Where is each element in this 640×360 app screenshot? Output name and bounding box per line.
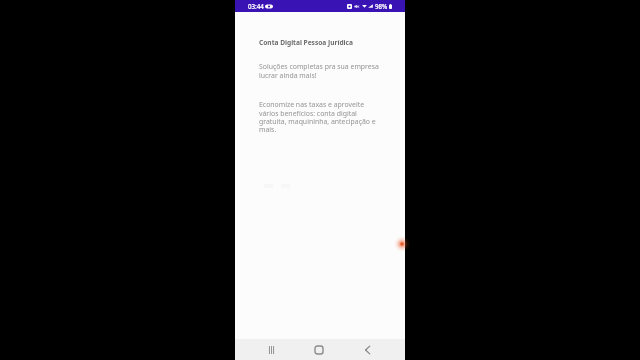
button[interactable]: Início [307, 339, 331, 360]
staticText: Economize nas taxas e aproveite vários b… [259, 100, 383, 134]
button[interactable]: Ajuda [394, 236, 410, 252]
button[interactable]: Recentes [259, 339, 283, 360]
button[interactable]: Voltar [355, 339, 379, 360]
staticText: 03:44 [248, 2, 264, 10]
staticText: Conta Digital Pessoa Jurídica [259, 38, 353, 47]
staticText: 98% [375, 2, 388, 10]
staticText: Soluções completas pra sua empresa lucra… [259, 62, 383, 80]
